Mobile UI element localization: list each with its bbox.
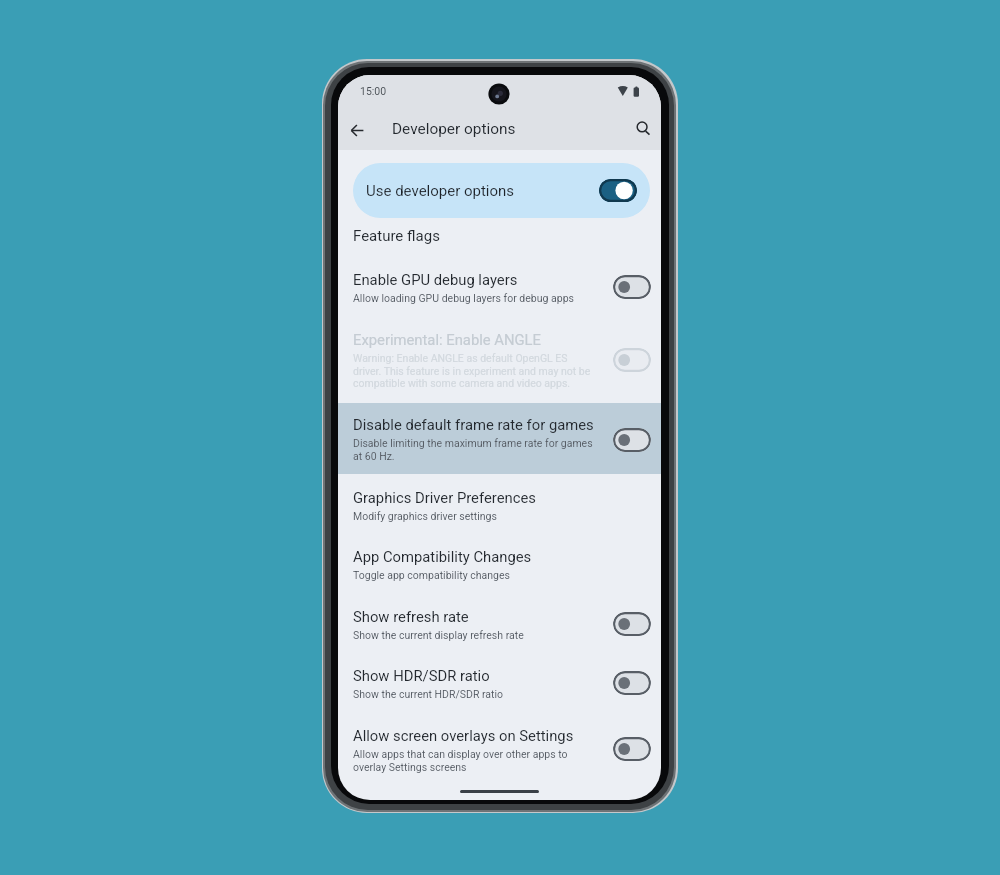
button[interactable]: Use developer options	[353, 163, 650, 218]
button[interactable]: Use developer options toggle	[599, 179, 637, 202]
button[interactable]: Toggle Show refresh rate	[613, 612, 651, 636]
staticText: App Compatibility Changes	[353, 548, 532, 565]
staticText: Show the current display refresh rate	[353, 629, 524, 641]
staticText: Developer options	[392, 120, 516, 138]
staticText: Graphics Driver Preferences	[353, 489, 536, 506]
staticText: Allow loading GPU debug layers for debug…	[353, 292, 574, 304]
staticText: Experimental: Enable ANGLE	[353, 331, 541, 348]
button[interactable]: Toggle Allow screen overlays on Settings	[613, 737, 651, 761]
button[interactable]: Search	[626, 111, 661, 147]
staticText: Disable default frame rate for games	[353, 416, 594, 433]
staticText: Toggle app compatibility changes	[353, 569, 510, 581]
staticText: at 60 Hz.	[353, 450, 395, 462]
other: Toggle Experimental: Enable ANGLE	[613, 348, 651, 372]
staticText: Allow screen overlays on Settings	[353, 727, 574, 744]
button[interactable]	[338, 262, 661, 295]
staticText: Show the current HDR/SDR ratio	[353, 688, 504, 700]
staticText: Feature flags	[353, 227, 440, 245]
staticText: Enable GPU debug layers	[353, 271, 518, 288]
button[interactable]	[338, 407, 661, 452]
button[interactable]	[338, 480, 661, 513]
staticText: driver. This feature is in experiment an…	[353, 365, 591, 377]
staticText: overlay Settings screens	[353, 761, 467, 773]
button[interactable]	[338, 719, 661, 764]
staticText: compatible with some camera and video ap…	[353, 377, 571, 389]
staticText: Use developer options	[366, 182, 515, 200]
staticText: Allow apps that can display over other a…	[353, 748, 568, 760]
staticText: Show HDR/SDR ratio	[353, 667, 490, 684]
staticText: Warning: Enable ANGLE as default OpenGL …	[353, 352, 568, 364]
button[interactable]: Toggle Enable GPU debug layers	[613, 275, 651, 299]
staticText: Show refresh rate	[353, 608, 469, 625]
button[interactable]	[338, 599, 661, 632]
button[interactable]: Toggle Disable default frame rate for ga…	[613, 428, 651, 452]
button[interactable]	[338, 658, 661, 691]
staticText: 15:00	[360, 85, 387, 97]
staticText: Disable limiting the maximum frame rate …	[353, 437, 593, 449]
button[interactable]: Back	[339, 112, 375, 148]
button[interactable]	[338, 540, 661, 573]
button[interactable]	[338, 322, 661, 380]
staticText: Modify graphics driver settings	[353, 510, 497, 522]
button[interactable]: Toggle Show HDR/SDR ratio	[613, 671, 651, 695]
